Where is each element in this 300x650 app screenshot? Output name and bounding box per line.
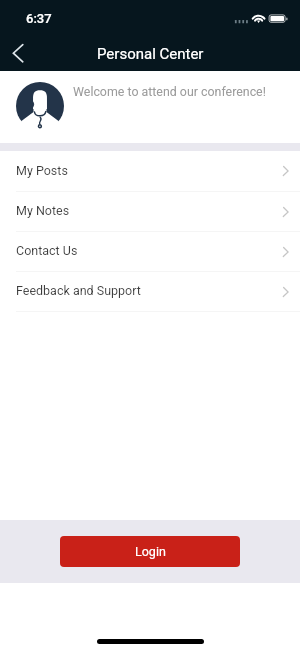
staticText: 6:37 — [26, 11, 52, 26]
staticText: My Notes — [16, 203, 70, 218]
button[interactable]: Contact Us — [0, 231, 300, 271]
button[interactable]: Login — [60, 536, 240, 567]
staticText: Contact Us — [16, 243, 78, 258]
staticText: Personal Center — [97, 45, 204, 63]
button[interactable]: Back — [0, 36, 38, 71]
button[interactable]: Feedback and Support — [0, 271, 300, 311]
staticText: Login — [135, 544, 166, 559]
staticText: Welcome to attend our conference! — [73, 84, 266, 99]
button[interactable]: My Notes — [0, 191, 300, 231]
button[interactable]: My Posts — [0, 151, 300, 191]
staticText: Feedback and Support — [16, 283, 141, 298]
staticText: My Posts — [16, 163, 68, 178]
